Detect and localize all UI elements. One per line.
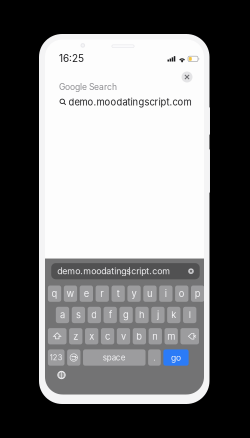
staticText: Google Search (59, 82, 117, 92)
button[interactable]: space (83, 349, 145, 366)
button[interactable]: c (101, 328, 114, 344)
button[interactable]: demo.moodatingscript.com (45, 94, 204, 110)
staticText: r (100, 288, 104, 299)
staticText: y (132, 288, 137, 299)
staticText: p (195, 288, 201, 299)
staticText: . (153, 352, 155, 363)
button[interactable]: go (163, 349, 189, 366)
button[interactable]: z (69, 328, 82, 344)
staticText: a (60, 309, 65, 321)
button[interactable]: Delete (180, 328, 199, 344)
staticText: f (109, 309, 112, 321)
staticText: d (91, 309, 97, 321)
staticText: j (157, 309, 159, 321)
staticText: o (179, 288, 185, 299)
button[interactable]: k (167, 307, 180, 323)
staticText: x (89, 331, 94, 342)
button[interactable]: Next keyboard (56, 369, 67, 380)
button[interactable]: d (88, 307, 101, 323)
staticText: t (117, 288, 120, 299)
staticText: u (147, 288, 153, 299)
button[interactable]: x (85, 328, 98, 344)
staticText: m (167, 331, 175, 342)
button[interactable]: . (148, 349, 161, 366)
button[interactable]: w (64, 285, 77, 302)
button[interactable]: a (56, 307, 69, 323)
staticText: go (171, 352, 181, 363)
staticText: g (123, 309, 129, 321)
button[interactable]: Shift (48, 328, 66, 344)
button[interactable]: o (175, 285, 188, 302)
staticText: e (84, 288, 89, 299)
button[interactable]: r (96, 285, 109, 302)
staticText: q (51, 288, 57, 299)
staticText: 123 (50, 353, 63, 362)
button[interactable]: e (80, 285, 93, 302)
button[interactable]: i (159, 285, 172, 302)
staticText: s (76, 309, 81, 321)
staticText: space (103, 353, 126, 362)
button[interactable]: l (183, 307, 196, 323)
staticText: 16:25 (59, 52, 84, 64)
button[interactable]: q (48, 285, 61, 302)
staticText: w (66, 288, 74, 299)
staticText: demo.moodatingscript.com (57, 266, 170, 276)
staticText: i (165, 288, 167, 299)
button[interactable]: j (151, 307, 164, 323)
staticText: v (121, 331, 126, 342)
staticText: c (105, 331, 110, 342)
button[interactable]: n (149, 328, 162, 344)
staticText: n (152, 331, 158, 342)
staticText: demo.moodatingscript.com (69, 96, 192, 108)
button[interactable]: u (143, 285, 157, 302)
button[interactable]: h (135, 307, 149, 323)
button[interactable]: p (191, 285, 204, 302)
button[interactable]: 123 (48, 349, 64, 366)
button[interactable]: b (133, 328, 146, 344)
button[interactable]: v (117, 328, 130, 344)
button[interactable]: Emoji (67, 349, 80, 366)
staticText: k (171, 309, 176, 321)
staticText: h (139, 309, 145, 321)
button[interactable]: s (72, 307, 85, 323)
button[interactable]: Close (180, 70, 194, 84)
staticText: l (189, 309, 191, 321)
button[interactable]: f (104, 307, 117, 323)
button[interactable]: g (119, 307, 133, 323)
staticText: b (136, 331, 142, 342)
button[interactable]: t (111, 285, 125, 302)
staticText: z (73, 331, 78, 342)
button[interactable]: m (164, 328, 178, 344)
button[interactable]: y (127, 285, 141, 302)
